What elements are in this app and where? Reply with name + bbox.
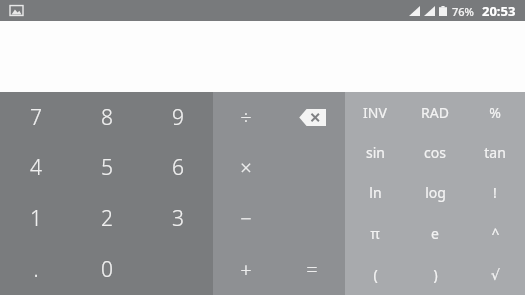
button[interactable]: + xyxy=(213,244,279,295)
staticText: − xyxy=(240,205,252,232)
button[interactable]: 6 xyxy=(142,142,213,193)
button[interactable]: log xyxy=(405,172,465,213)
button[interactable]: 2 xyxy=(71,193,142,244)
button[interactable]: 1 xyxy=(0,193,71,244)
staticText: ÷ xyxy=(240,104,252,131)
staticText: 76% xyxy=(452,4,474,19)
button[interactable]: − xyxy=(213,193,279,244)
staticText: 4 xyxy=(30,153,42,182)
staticText: 5 xyxy=(101,153,113,182)
button[interactable]: INV xyxy=(345,92,405,132)
staticText: √ xyxy=(491,267,500,283)
staticText: 9 xyxy=(172,103,184,132)
button[interactable]: ^ xyxy=(465,213,525,254)
button[interactable]: e xyxy=(405,213,465,254)
staticText: 2 xyxy=(101,204,113,233)
staticText: sin xyxy=(366,143,385,162)
staticText: 20:53 xyxy=(482,2,516,20)
button[interactable]: 8 xyxy=(71,92,142,142)
staticText: = xyxy=(306,256,318,283)
button[interactable]: 3 xyxy=(142,193,213,244)
button[interactable]: . xyxy=(0,244,71,295)
button[interactable]: 9 xyxy=(142,92,213,142)
button[interactable]: 5 xyxy=(71,142,142,193)
button[interactable]: ( xyxy=(345,254,405,295)
button[interactable]: RAD xyxy=(405,92,465,132)
staticText: cos xyxy=(424,143,446,162)
staticText: INV xyxy=(363,103,387,122)
staticText: + xyxy=(240,256,252,283)
staticText: 7 xyxy=(30,103,42,132)
button[interactable]: Backspace xyxy=(279,92,345,142)
staticText: × xyxy=(240,154,252,181)
staticText: 0 xyxy=(101,255,113,284)
staticText: ln xyxy=(369,183,382,202)
staticText: RAD xyxy=(421,103,449,122)
staticText: ! xyxy=(493,183,497,202)
button[interactable]: 4 xyxy=(0,142,71,193)
button[interactable]: ! xyxy=(465,172,525,213)
button[interactable]: √ xyxy=(465,254,525,295)
staticText: ) xyxy=(433,265,438,284)
staticText: e xyxy=(431,224,439,243)
staticText: % xyxy=(489,103,501,122)
staticText: ^ xyxy=(491,224,500,243)
staticText: ( xyxy=(373,265,378,284)
staticText: 1 xyxy=(30,204,42,233)
button[interactable]: 0 xyxy=(71,244,142,295)
staticText: π xyxy=(370,224,380,243)
button[interactable]: % xyxy=(465,92,525,132)
button[interactable]: 7 xyxy=(0,92,71,142)
staticText: 8 xyxy=(101,103,113,132)
staticText: 6 xyxy=(172,153,184,182)
button[interactable]: tan xyxy=(465,132,525,172)
staticText: log xyxy=(425,183,446,202)
button[interactable]: ÷ xyxy=(213,92,279,142)
button[interactable]: = xyxy=(279,244,345,295)
staticText: tan xyxy=(484,143,506,162)
staticText: 3 xyxy=(172,204,184,233)
staticText: . xyxy=(33,255,39,284)
button[interactable]: π xyxy=(345,213,405,254)
button[interactable]: cos xyxy=(405,132,465,172)
button[interactable]: × xyxy=(213,142,279,193)
button[interactable]: ln xyxy=(345,172,405,213)
button[interactable]: ) xyxy=(405,254,465,295)
button[interactable]: sin xyxy=(345,132,405,172)
